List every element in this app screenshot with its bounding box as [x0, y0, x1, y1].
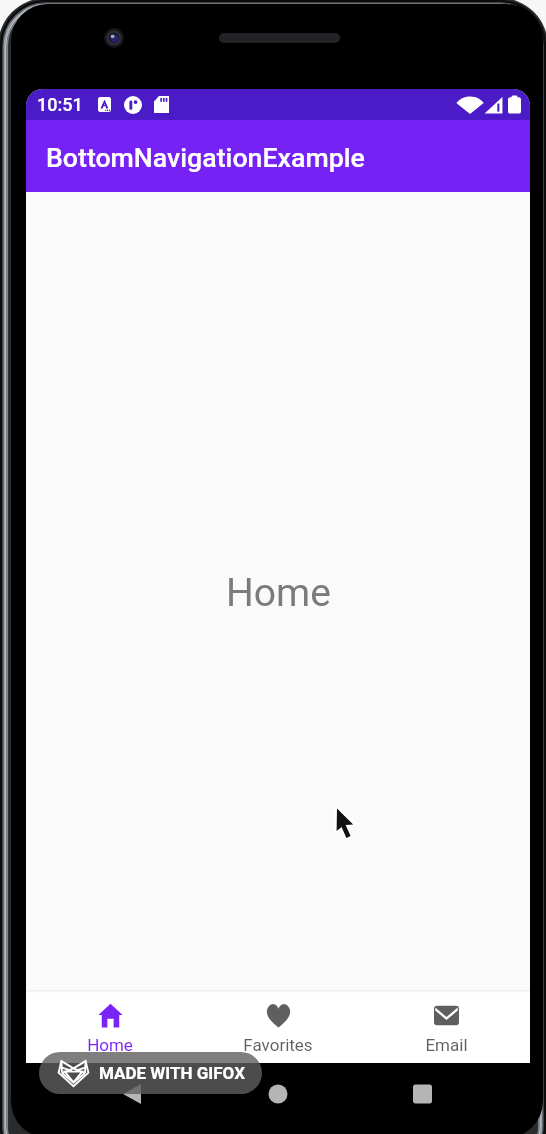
button[interactable]: Email [362, 990, 530, 1063]
staticText: 10:51 [37, 94, 83, 115]
staticText: Email [425, 1035, 468, 1055]
button[interactable]: Favorites [194, 990, 362, 1063]
staticText: BottomNavigationExample [46, 142, 365, 173]
staticText: Favorites [243, 1035, 313, 1055]
staticText: MADE WITH GIFOX [99, 1063, 245, 1083]
staticText: Home [226, 570, 331, 616]
button[interactable]: Back [113, 1079, 151, 1109]
button[interactable]: Recent apps [403, 1079, 441, 1109]
button[interactable]: Home [259, 1079, 297, 1109]
staticText: Home [87, 1035, 133, 1055]
button[interactable]: Home [26, 990, 194, 1063]
